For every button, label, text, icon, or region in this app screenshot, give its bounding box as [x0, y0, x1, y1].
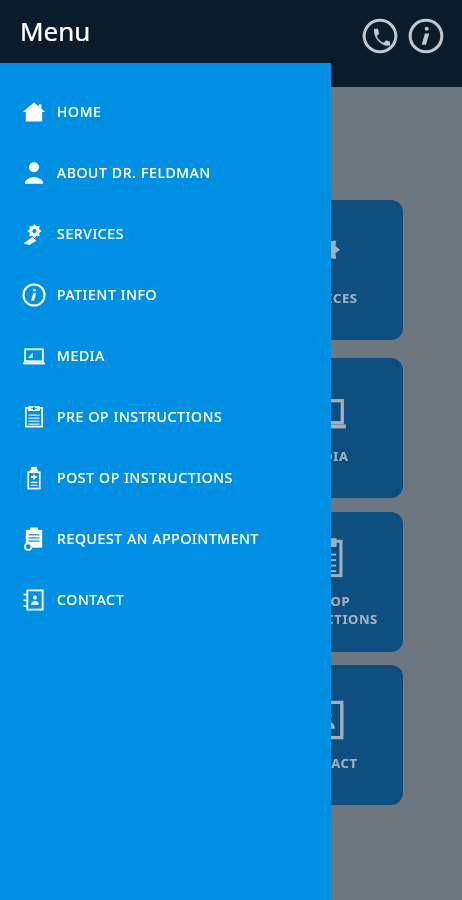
button[interactable]: MEDIA	[0, 325, 331, 386]
staticText: REQUEST AN APPOINTMENT	[57, 529, 260, 548]
staticText: Menu	[20, 13, 91, 48]
staticText: ABOUT DR. FELDMAN	[57, 163, 211, 182]
staticText: PATIENT INFO	[57, 285, 158, 304]
button[interactable]: Information	[404, 14, 448, 58]
staticText: SERVICES	[57, 224, 125, 243]
button[interactable]: CONTACT	[0, 569, 331, 630]
button[interactable]: ABOUT DR. FELDMAN	[0, 142, 331, 203]
staticText: MEDIA	[57, 346, 105, 365]
button[interactable]: REQUEST AN APPOINTMENT	[0, 508, 331, 569]
button[interactable]: PATIENT INFO	[0, 264, 331, 325]
staticText: PRE OP INSTRUCTIONS	[57, 407, 223, 426]
button[interactable]: Call	[358, 14, 402, 58]
button[interactable]: PRE OP INSTRUCTIONS	[247, 512, 403, 652]
staticText: CONTACT	[293, 754, 358, 772]
staticText: PRE OP INSTRUCTIONS	[273, 592, 378, 628]
button[interactable]: CONTACT	[247, 665, 403, 805]
staticText: CONTACT	[57, 590, 125, 609]
button[interactable]: HOME	[0, 81, 331, 142]
staticText: HOME	[57, 102, 102, 121]
button[interactable]: POST OP INSTRUCTIONS	[0, 447, 331, 508]
staticText: SERVICES	[293, 289, 358, 307]
button[interactable]: SERVICES	[0, 203, 331, 264]
button[interactable]: SERVICES	[247, 200, 403, 340]
staticText: POST OP INSTRUCTIONS	[57, 468, 233, 487]
button[interactable]: PRE OP INSTRUCTIONS	[0, 386, 331, 447]
staticText: MEDIA	[302, 447, 349, 465]
button[interactable]: MEDIA	[247, 358, 403, 498]
